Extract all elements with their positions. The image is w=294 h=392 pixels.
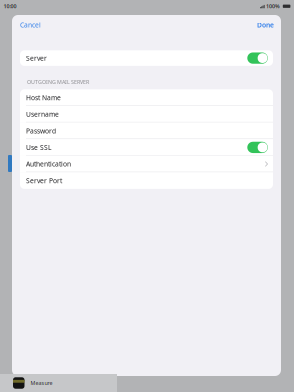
staticText: 10:00 <box>4 3 17 10</box>
staticText: Server Port <box>26 176 62 185</box>
staticText: 100% <box>266 3 280 10</box>
button[interactable]: Measure <box>0 374 117 392</box>
staticText: Password <box>26 126 56 135</box>
staticText: OUTGOING MAIL SERVER <box>27 78 89 85</box>
staticText: Measure <box>30 379 52 387</box>
staticText: Done <box>257 21 274 29</box>
button[interactable]: Server Port <box>20 172 273 189</box>
button[interactable]: Authentication <box>20 156 273 172</box>
button[interactable]: Username <box>20 106 273 122</box>
staticText: Authentication <box>26 160 71 168</box>
button[interactable]: Use SSL <box>20 139 273 156</box>
staticText: Host Name <box>26 93 61 102</box>
button[interactable]: Host Name <box>20 89 273 106</box>
button[interactable]: Password <box>20 122 273 139</box>
button[interactable]: Cancel <box>12 17 45 33</box>
staticText: Server <box>26 54 47 63</box>
staticText: Cancel <box>20 21 41 29</box>
button[interactable]: Server <box>20 50 273 66</box>
button[interactable]: Done <box>253 17 281 33</box>
staticText: Use SSL <box>26 143 51 152</box>
staticText: Username <box>26 110 59 119</box>
